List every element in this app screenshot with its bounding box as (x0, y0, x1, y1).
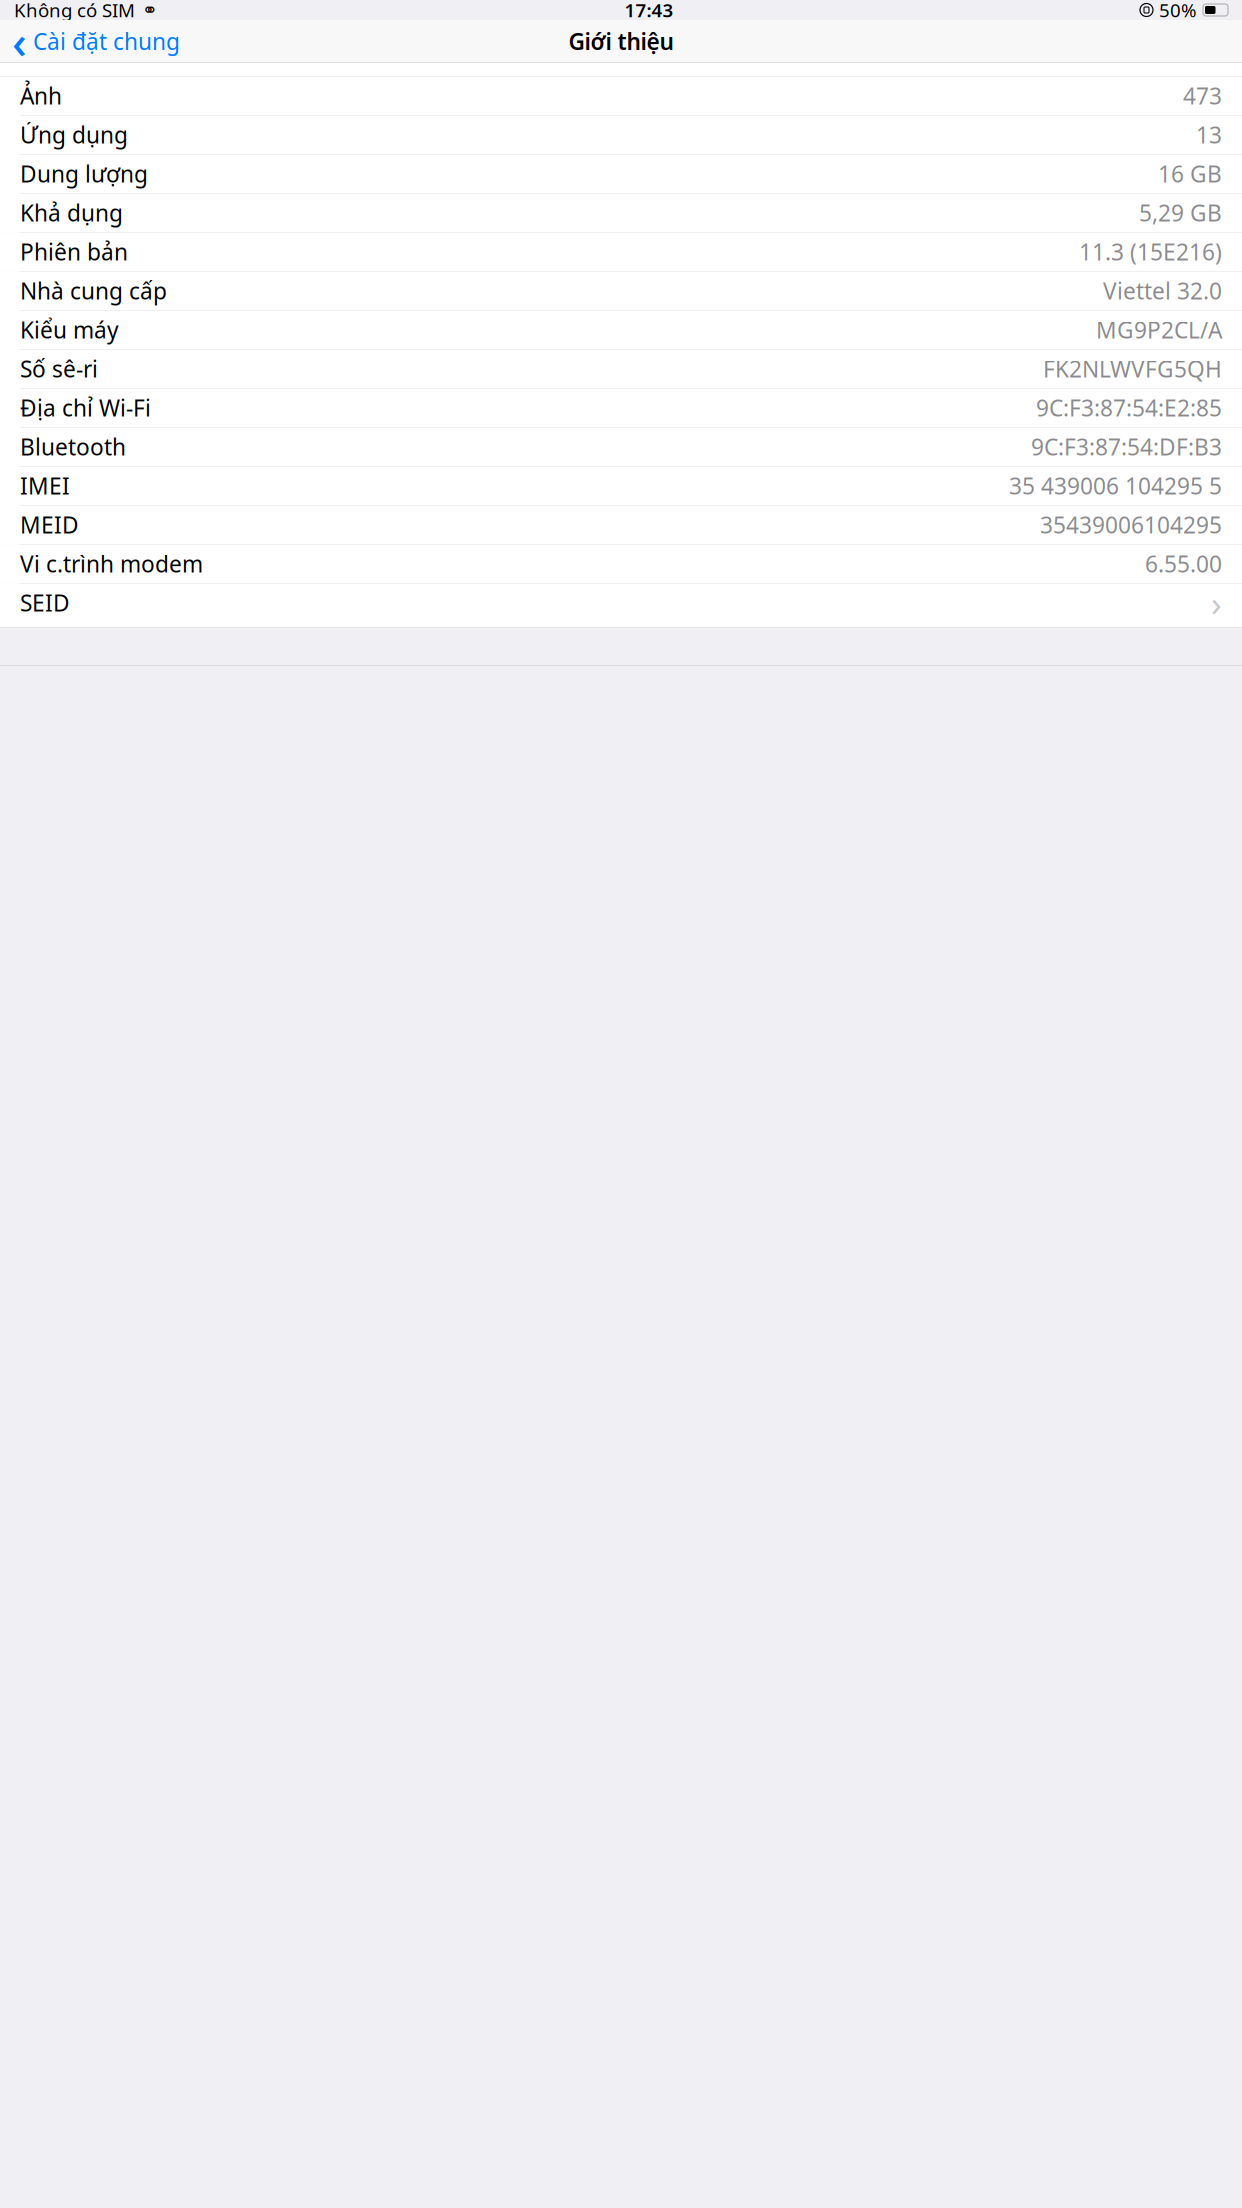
button[interactable]: SEID (0, 583, 1242, 622)
staticText: 16 GB (1158, 159, 1222, 189)
staticText: Khả dụng (20, 198, 123, 228)
staticText: Bluetooth (20, 432, 126, 462)
staticText: Nhà cung cấp (20, 276, 167, 306)
staticText: 13 (1196, 120, 1222, 150)
button[interactable]: MEID (0, 505, 1242, 544)
staticText: SEID (20, 588, 70, 618)
staticText: 17:43 (624, 0, 673, 22)
staticText: Kiểu máy (20, 315, 119, 345)
staticText: Ứng dụng (20, 120, 128, 150)
button[interactable]: Địa chỉ Wi-Fi (0, 388, 1242, 427)
staticText: Số sê-ri (20, 354, 98, 384)
button[interactable]: Vi c.trình modem (0, 544, 1242, 583)
staticText: 9C:F3:87:54:DF:B3 (1031, 432, 1222, 462)
button[interactable]: Ứng dụng (0, 115, 1242, 154)
button[interactable]: ‹ (4, 20, 188, 62)
staticText: Phiên bản (20, 237, 128, 267)
staticText: 9C:F3:87:54:E2:85 (1036, 393, 1222, 423)
staticText: ‹ (12, 11, 27, 71)
staticText: 6.55.00 (1145, 549, 1222, 579)
staticText: Không có SIM (14, 0, 135, 22)
button[interactable]: Phiên bản (0, 232, 1242, 271)
button[interactable]: Số sê-ri (0, 349, 1242, 388)
staticText: 473 (1183, 81, 1222, 111)
staticText: Dung lượng (20, 159, 148, 189)
button[interactable]: Kiểu máy (0, 310, 1242, 349)
staticText: IMEI (20, 471, 70, 501)
staticText: 35439006104295 (1040, 510, 1222, 540)
staticText: Viettel 32.0 (1103, 276, 1222, 306)
staticText: MEID (20, 510, 79, 540)
button[interactable]: Khả dụng (0, 193, 1242, 232)
staticText: Cài đặt chung (33, 26, 180, 56)
staticText: Vi c.trình modem (20, 549, 203, 579)
staticText: Giới thiệu (568, 26, 673, 56)
staticText: ⚭ (142, 0, 158, 21)
button[interactable]: Bluetooth (0, 427, 1242, 466)
staticText: FK2NLWVFG5QH (1043, 354, 1222, 384)
button[interactable]: Ảnh (0, 76, 1242, 115)
button[interactable]: Nhà cung cấp (0, 271, 1242, 310)
button[interactable]: Dung lượng (0, 154, 1242, 193)
staticText: MG9P2CL/A (1096, 315, 1222, 345)
staticText: Địa chỉ Wi-Fi (20, 393, 151, 423)
staticText: 11.3 (15E216) (1079, 237, 1222, 267)
staticText: 5,29 GB (1139, 198, 1222, 228)
staticText: Ảnh (20, 81, 62, 111)
button[interactable]: IMEI (0, 466, 1242, 505)
staticText: 50% (1159, 0, 1197, 22)
staticText: › (1211, 580, 1222, 626)
staticText: 35 439006 104295 5 (1009, 471, 1222, 501)
